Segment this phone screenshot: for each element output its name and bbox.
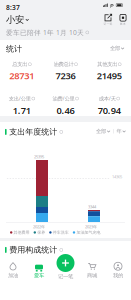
staticText: 70.94 [98, 104, 121, 116]
button[interactable]: 商城 [79, 262, 105, 279]
staticText: 统计 [6, 44, 22, 54]
staticText: 油费总计 [53, 61, 73, 68]
staticText: 28731 [9, 70, 34, 82]
staticText: 加油加气充电 [76, 230, 100, 235]
button[interactable]: 爱车 [26, 262, 52, 279]
staticText: 1.71 [13, 104, 31, 116]
staticText: 爱车 [34, 272, 44, 279]
staticText: 爱车已陪伴 1年 1月 10天 [6, 28, 84, 37]
staticText: 记一笔 [103, 22, 112, 25]
staticText: 8:37 [6, 3, 20, 12]
staticText: 成本/天 [99, 95, 116, 102]
staticText: 费用构成统计 [9, 245, 57, 255]
staticText: 加油 [8, 272, 18, 279]
staticText: 商城 [87, 272, 97, 279]
button[interactable]: 我的 [105, 262, 131, 279]
staticText: 我的 [113, 272, 123, 279]
button[interactable]: Add record [101, 14, 115, 25]
button[interactable]: Add entry [52, 254, 79, 280]
staticText: 保养 [37, 230, 45, 235]
staticText: 2022年 [33, 224, 45, 229]
staticText: 油费/公里 [52, 95, 74, 102]
button[interactable]: 年 [116, 128, 125, 135]
staticText: 0.46 [56, 104, 74, 116]
staticText: 年 [116, 128, 121, 135]
staticText: 支出/公里 [9, 95, 31, 102]
staticText: 25395 [34, 154, 44, 159]
staticText: 其他费用 [14, 230, 30, 235]
staticText: 全部 [96, 128, 106, 135]
staticText: 账本 [120, 22, 126, 25]
staticText: 支出年度统计 [9, 127, 57, 137]
staticText: 2023年 [85, 224, 97, 229]
button[interactable]: Ledger [116, 14, 130, 25]
staticText: 7236 [55, 70, 75, 82]
staticText: 3344 [88, 204, 96, 209]
staticText: 停车洗车 [53, 230, 69, 235]
staticText: 14365 [112, 174, 122, 179]
staticText: 记一笔 [58, 273, 73, 280]
staticText: 其他支出 [97, 61, 117, 68]
button[interactable]: 全部 [110, 45, 124, 52]
button[interactable]: 小安 [6, 14, 29, 25]
staticText: 全部 [110, 45, 120, 52]
staticText: 总支出 [12, 61, 27, 68]
staticText: 21495 [97, 70, 122, 82]
button[interactable]: 加油 [0, 262, 26, 279]
button[interactable]: 全部 [96, 128, 110, 135]
staticText: 小安 [6, 14, 24, 25]
